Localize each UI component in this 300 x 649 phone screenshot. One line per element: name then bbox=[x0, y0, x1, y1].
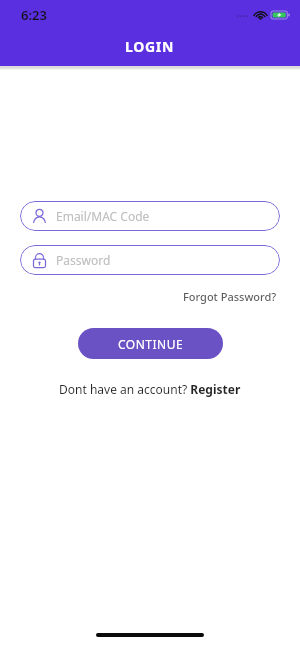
staticText: CONTINUE bbox=[118, 336, 184, 352]
button[interactable]: Password bbox=[20, 245, 280, 275]
button[interactable]: CONTINUE bbox=[78, 328, 223, 359]
staticText: Email/MAC Code bbox=[56, 208, 150, 224]
staticText: LOGIN bbox=[125, 37, 175, 56]
button[interactable]: Email/MAC Code bbox=[20, 201, 280, 231]
staticText: 6:23 bbox=[21, 6, 47, 24]
button[interactable]: Forgot Password? bbox=[181, 287, 279, 306]
staticText: Password bbox=[56, 252, 111, 268]
staticText: Forgot Password? bbox=[183, 289, 277, 304]
button[interactable]: Dont have an account? Register bbox=[55, 379, 245, 399]
staticText: Dont have an account? Register bbox=[59, 381, 241, 397]
